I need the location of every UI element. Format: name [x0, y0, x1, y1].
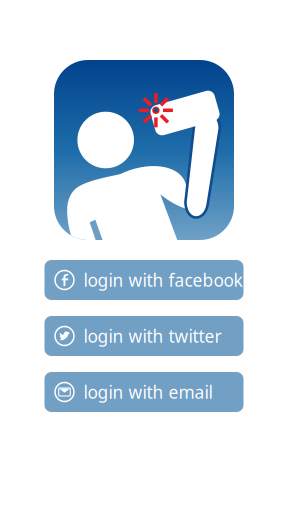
staticText: login with email: [83, 380, 212, 403]
staticText: login with facebook: [83, 268, 242, 291]
button[interactable]: login with facebook: [44, 260, 243, 300]
staticText: login with twitter: [83, 324, 221, 347]
button[interactable]: login with email: [44, 372, 243, 412]
button[interactable]: login with twitter: [44, 316, 243, 356]
